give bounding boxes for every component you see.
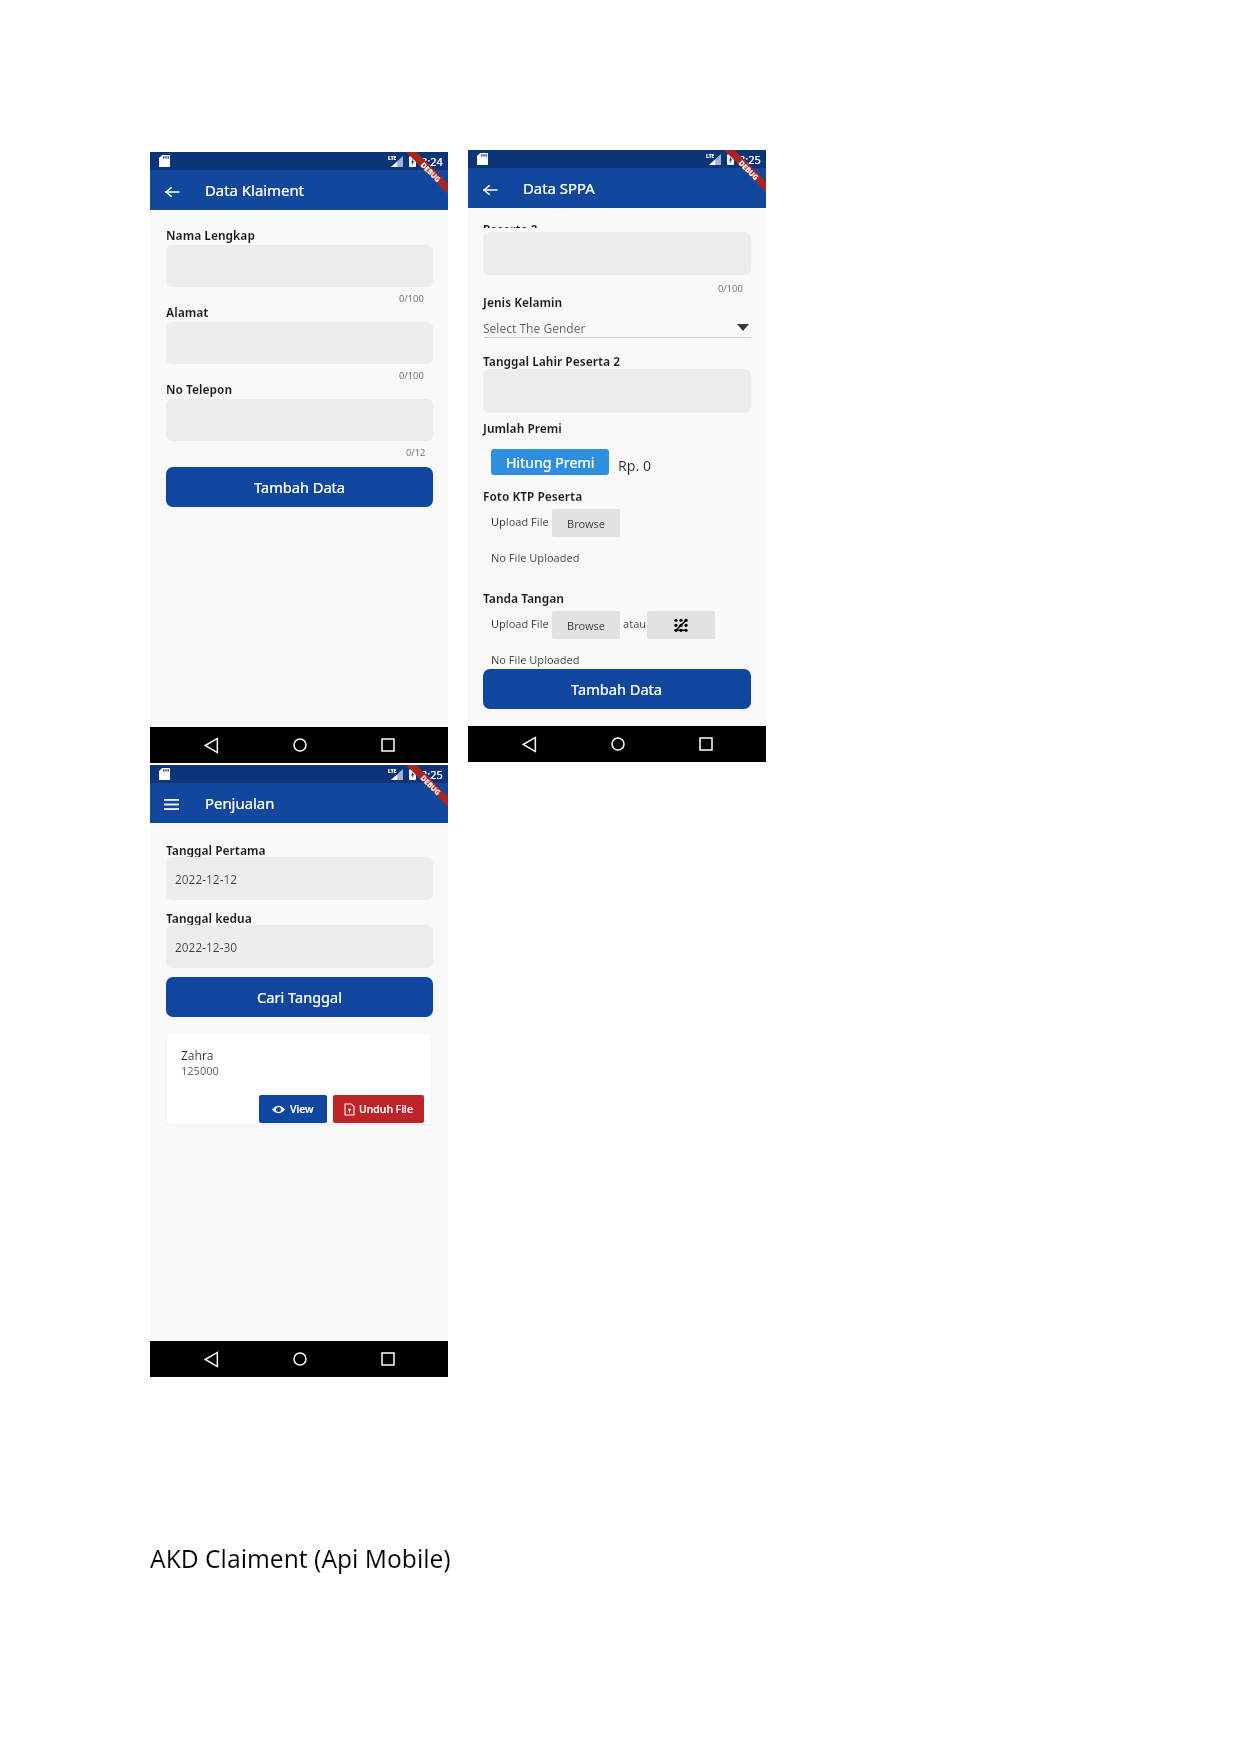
staticText: Data SPPA — [523, 178, 595, 198]
staticText: Upload File — [491, 514, 549, 529]
staticText: 3:24 — [421, 154, 443, 169]
button[interactable]: Recents — [372, 730, 403, 760]
button[interactable]: Back — [156, 176, 187, 207]
staticText: LTE — [388, 155, 397, 162]
staticText: LTE — [706, 153, 715, 160]
button[interactable]: Recents — [372, 1344, 403, 1374]
button[interactable]: Back — [196, 1344, 227, 1374]
button[interactable]: Home — [284, 730, 315, 760]
staticText: No File Uploaded — [491, 652, 580, 667]
button[interactable]: Back — [514, 729, 545, 759]
button[interactable]: View — [259, 1095, 327, 1123]
staticText: Jumlah Premi — [483, 420, 562, 436]
staticText: Tanggal kedua — [166, 910, 252, 926]
button[interactable]: Tambah Data — [166, 467, 433, 507]
staticText: 0/100 — [399, 292, 424, 305]
staticText: Peserta 2 — [483, 223, 538, 228]
staticText: Zahra — [181, 1047, 214, 1063]
staticText: atau — [623, 616, 647, 631]
staticText: DEBUG — [418, 774, 443, 798]
button[interactable]: Browse — [552, 611, 620, 639]
staticText: Tanda Tangan — [483, 590, 564, 606]
staticText: Unduh File — [359, 1102, 413, 1116]
staticText: Hitung Premi — [506, 453, 595, 472]
button[interactable]: Home — [284, 1344, 315, 1374]
button[interactable]: Draw signature — [647, 611, 715, 639]
button[interactable]: Home — [602, 729, 633, 759]
staticText: Tambah Data — [254, 477, 346, 497]
staticText: DEBUG — [736, 159, 761, 183]
button[interactable]: Browse — [552, 509, 620, 537]
staticText: Nama Lengkap — [166, 227, 255, 243]
staticText: Penjualan — [205, 793, 275, 813]
staticText: Data Klaiment — [205, 180, 304, 200]
staticText: 2022-12-12 — [175, 871, 238, 887]
button[interactable]: Zahra — [167, 1034, 431, 1124]
button[interactable]: Hitung Premi — [491, 449, 609, 475]
button[interactable]: Unduh File — [333, 1095, 424, 1123]
staticText: View — [290, 1102, 314, 1116]
staticText: Jenis Kelamin — [483, 294, 563, 310]
button[interactable]: Tambah Data — [483, 669, 751, 709]
staticText: Tambah Data — [571, 679, 663, 699]
button[interactable]: 2022-12-30 — [166, 925, 433, 968]
button[interactable]: Back — [196, 730, 227, 760]
button[interactable]: Recents — [690, 729, 721, 759]
staticText: Tanggal Pertama — [166, 842, 266, 858]
staticText: Foto KTP Peserta — [483, 488, 583, 504]
staticText: No File Uploaded — [491, 550, 580, 565]
staticText: Cari Tanggal — [257, 987, 343, 1007]
button[interactable]: Back — [474, 174, 505, 205]
staticText: 0/100 — [399, 369, 424, 382]
staticText: Browse — [567, 516, 606, 531]
button[interactable]: Menu — [156, 789, 187, 820]
button[interactable]: 2022-12-12 — [166, 857, 433, 900]
staticText: Select The Gender — [483, 320, 586, 336]
staticText: 2022-12-30 — [175, 939, 238, 955]
staticText: No Telepon — [166, 381, 233, 397]
staticText: Tanggal Lahir Peserta 2 — [483, 353, 620, 369]
staticText: 0/12 — [406, 446, 426, 459]
staticText: DEBUG — [418, 161, 443, 185]
staticText: 0/100 — [718, 282, 743, 295]
staticText: 125000 — [181, 1063, 219, 1078]
button[interactable]: Cari Tanggal — [166, 977, 433, 1017]
staticText: LTE — [388, 768, 397, 775]
staticText: Upload File — [491, 616, 549, 631]
staticText: Rp. 0 — [618, 456, 652, 475]
staticText: Alamat — [166, 304, 209, 320]
staticText: AKD Claiment (Api Mobile) — [150, 1542, 451, 1575]
staticText: Browse — [567, 618, 606, 633]
staticText: 3:25 — [421, 767, 443, 782]
staticText: 3:25 — [739, 152, 761, 167]
